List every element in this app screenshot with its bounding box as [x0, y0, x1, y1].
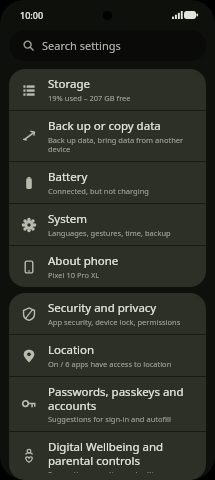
other: Battery — [184, 11, 198, 19]
staticText: Search settings — [42, 38, 121, 53]
button[interactable]: System — [9, 204, 206, 245]
button[interactable]: Security and privacy — [9, 293, 206, 334]
staticText: Back up data, bring data from another de… — [48, 135, 192, 154]
staticText: About phone — [48, 253, 119, 269]
button[interactable]: Location — [9, 335, 206, 376]
staticText: Languages, gestures, time, backup — [48, 228, 171, 238]
button[interactable]: Back up or copy data — [9, 111, 206, 161]
staticText: Back up or copy data — [48, 118, 161, 134]
button[interactable]: Search settings — [9, 30, 206, 61]
staticText: 10:00 — [20, 9, 44, 21]
staticText: Suggestions for sign-in and autofill — [48, 414, 171, 424]
staticText: App security, device lock, permissions — [48, 317, 181, 327]
staticText: Digital Wellbeing and parental controls — [48, 439, 192, 468]
button[interactable]: Storage — [9, 69, 206, 110]
other: Signal strength — [172, 11, 181, 19]
staticText: Connected, but not charging — [48, 186, 149, 196]
staticText: Security and privacy — [48, 300, 157, 316]
staticText: Battery — [48, 169, 88, 185]
staticText: Storage — [48, 76, 90, 92]
staticText: Passwords, passkeys and accounts — [48, 384, 192, 413]
staticText: Location — [48, 342, 95, 358]
button[interactable]: Battery — [9, 162, 206, 203]
staticText: On / 6 apps have access to location — [48, 359, 172, 369]
staticText: Pixel 10 Pro XL — [48, 270, 100, 280]
button[interactable]: Passwords, passkeys and accounts — [9, 377, 206, 431]
staticText: 19% used – 207 GB free — [48, 93, 131, 103]
button[interactable]: About phone — [9, 246, 206, 287]
staticText: Screen time, app timers, bedtime schedul… — [48, 469, 192, 473]
button[interactable]: Digital Wellbeing and parental controls — [9, 432, 206, 480]
staticText: System — [48, 211, 88, 227]
